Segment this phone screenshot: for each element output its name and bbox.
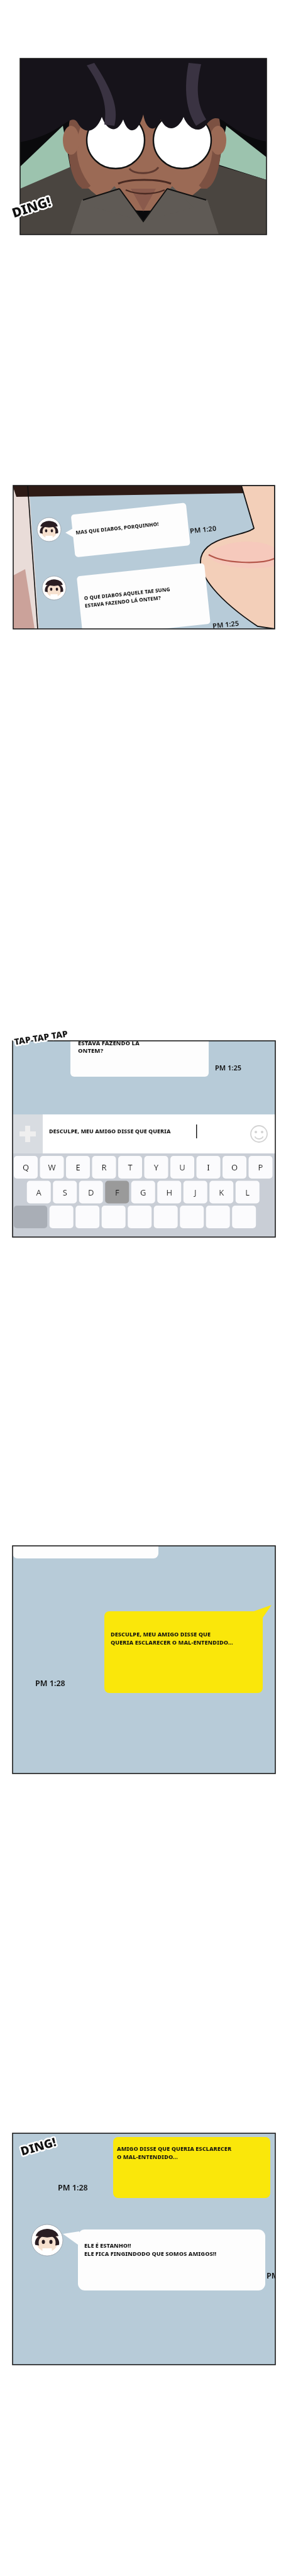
button[interactable]: [0, 0, 286, 2576]
